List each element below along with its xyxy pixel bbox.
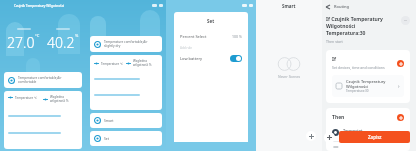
staticText: °C — [35, 33, 40, 38]
staticText: % — [75, 33, 79, 38]
button[interactable]: Add condition — [397, 60, 404, 67]
staticText: Wzgledna wilgotność % — [133, 59, 158, 67]
button[interactable]: Add — [324, 132, 335, 143]
staticText: 40.2 — [47, 33, 75, 52]
staticText: Czujnik Temperatury Wilgotności — [14, 4, 65, 8]
button[interactable]: Back — [324, 3, 331, 10]
staticText: Routing — [334, 4, 350, 9]
staticText: Zapisz — [368, 134, 382, 140]
staticText: Smart — [282, 3, 296, 9]
staticText: Temperature ℃ — [101, 62, 123, 66]
staticText: Temperature comfortable,Air comfortable — [18, 76, 78, 84]
staticText: Temperature ℃ — [15, 96, 37, 100]
staticText: Set — [207, 18, 215, 24]
staticText: ··· — [404, 18, 408, 23]
staticText: Wzgledna wilgotność % — [50, 95, 78, 103]
button[interactable]: More options — [401, 16, 410, 25]
staticText: Termostat — [343, 128, 363, 133]
button[interactable]: Temperature comfortable,Air slightly dry — [90, 36, 162, 52]
staticText: › — [398, 83, 400, 90]
staticText: Then start — [326, 39, 343, 44]
button[interactable]: Set — [90, 131, 162, 146]
staticText: Temperatura:30 — [346, 89, 369, 93]
staticText: Low battery — [180, 56, 230, 61]
button[interactable]: Percent Select — [180, 32, 242, 41]
button[interactable]: Low battery — [180, 55, 242, 62]
staticText: › — [402, 129, 404, 136]
staticText: Set — [104, 136, 109, 141]
button[interactable]: Add scene — [306, 131, 316, 141]
staticText: 100 % — [232, 34, 242, 39]
staticText: Smart — [104, 118, 114, 123]
staticText: If — [332, 56, 336, 63]
staticText: Czujnik Temperatury Wilgotności — [346, 79, 398, 89]
button[interactable]: Temperature comfortable,Air comfortable — [4, 72, 82, 88]
staticText: Percent Select — [180, 34, 232, 39]
button[interactable]: Zapisz — [339, 131, 410, 143]
staticText: Then — [332, 114, 397, 121]
button[interactable]: Termostat — [332, 126, 404, 139]
staticText: Temperature comfortable,Air slightly dry — [104, 40, 158, 48]
staticText: If Czujnik Temperatury Wilgotności Tempe… — [326, 16, 401, 37]
staticText: Set devices, time and conditions — [332, 65, 385, 70]
staticText: Never Scenes — [278, 74, 301, 79]
button[interactable]: Smart — [90, 113, 162, 128]
button[interactable]: Add action — [397, 114, 404, 121]
staticText: Add rule — [180, 46, 192, 50]
button[interactable]: Czujnik Temperatury Wilgotności — [332, 75, 404, 97]
staticText: 27.0 — [7, 33, 35, 52]
